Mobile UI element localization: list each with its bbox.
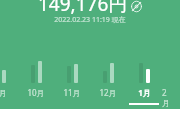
staticText: 149,176円 (38, 0, 128, 17)
staticText: 11月 (63, 87, 81, 98)
button[interactable]: 10月 (18, 51, 54, 109)
staticText: 10月 (27, 87, 45, 98)
button[interactable]: 1月 (126, 51, 162, 109)
staticText: 9月 (0, 87, 7, 98)
staticText: 2022.02.23 11:19 現在 (54, 15, 126, 25)
staticText: 1月 (138, 87, 151, 98)
button[interactable]: 11月 (54, 51, 90, 109)
staticText: 12月 (99, 87, 117, 98)
other: 残高を隠す (131, 1, 142, 12)
button[interactable]: 12月 (90, 51, 126, 109)
button[interactable]: 149,176円 (38, 0, 142, 17)
button[interactable]: 9月 (0, 51, 18, 109)
